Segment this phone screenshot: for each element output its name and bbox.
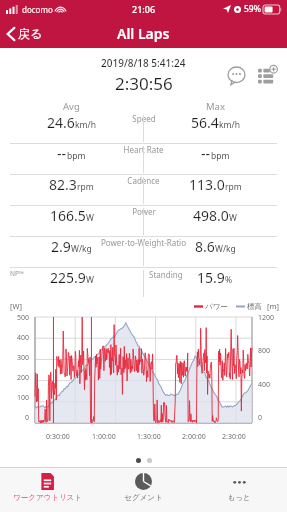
staticText: 1200 (258, 313, 275, 323)
staticText: 300 (17, 353, 30, 363)
staticText: 0:30:00 (46, 432, 70, 442)
staticText: Max (206, 100, 225, 113)
staticText: rpm (77, 181, 94, 193)
staticText: もっと (227, 493, 251, 502)
staticText: 400 (258, 380, 271, 390)
staticText: 2.9 (51, 237, 71, 256)
staticText: Cadence (127, 175, 160, 186)
staticText: 225.9 (50, 268, 86, 287)
staticText: Standing (149, 269, 183, 280)
staticText: 56.4 (191, 113, 219, 132)
button[interactable]: ワークアウトリスト (0, 468, 95, 512)
staticText: 59% (244, 3, 261, 15)
staticText: セグメント (124, 493, 163, 502)
staticText: 113.0 (189, 175, 225, 194)
staticText: W (229, 212, 237, 224)
staticText: docomo (22, 4, 53, 15)
button[interactable]: Comments (223, 62, 250, 89)
staticText: Power (132, 206, 156, 217)
staticText: 1:30:00 (137, 432, 161, 442)
button[interactable]: Add lap filter (254, 62, 281, 89)
staticText: 0 (25, 413, 30, 423)
staticText: rpm (225, 181, 242, 193)
staticText: 498.0 (193, 206, 229, 225)
staticText: W (86, 274, 94, 286)
staticText: bpm (211, 150, 230, 162)
button[interactable]: もっと (191, 468, 287, 512)
staticText: NP™ (10, 269, 24, 278)
staticText: Power-to-Weight-Ratio (101, 237, 186, 248)
staticText: 1:00:00 (92, 432, 116, 442)
staticText: Speed (132, 113, 156, 124)
staticText: km/h (75, 119, 96, 131)
staticText: 200 (17, 373, 30, 383)
staticText: 2:30:00 (222, 432, 246, 442)
staticText: -- (201, 144, 211, 163)
staticText: 500 (17, 313, 30, 323)
staticText: km/h (219, 119, 240, 131)
staticText: 標高 (247, 302, 262, 311)
staticText: W (86, 212, 94, 224)
staticText: [W] (10, 301, 22, 311)
staticText: 21:06 (132, 3, 156, 15)
staticText: 166.5 (50, 206, 86, 225)
staticText: All Laps (117, 24, 170, 43)
staticText: Avg (63, 100, 80, 113)
staticText: 0 (258, 413, 263, 423)
staticText: 戻る (18, 26, 43, 41)
staticText: 24.6 (47, 113, 75, 132)
staticText: [m] (267, 301, 279, 311)
staticText: % (225, 274, 233, 286)
staticText: 82.3 (49, 175, 77, 194)
staticText: 2:30:56 (115, 72, 173, 95)
staticText: 800 (258, 346, 271, 356)
staticText: W/kg (215, 243, 236, 255)
staticText: bpm (67, 150, 86, 162)
staticText: Heart Rate (123, 144, 164, 155)
button[interactable]: 戻る (0, 22, 53, 45)
button[interactable]: セグメント (95, 468, 191, 512)
staticText: 100 (17, 393, 30, 403)
staticText: -- (57, 144, 67, 163)
staticText: 400 (17, 333, 30, 343)
staticText: 2:00:00 (182, 432, 206, 442)
staticText: 15.9 (197, 268, 225, 287)
staticText: 2019/8/18 5:41:24 (101, 56, 186, 70)
staticText: パワー (205, 302, 228, 311)
staticText: ワークアウトリスト (13, 493, 82, 502)
staticText: W/kg (71, 243, 92, 255)
staticText: 8.6 (195, 237, 215, 256)
